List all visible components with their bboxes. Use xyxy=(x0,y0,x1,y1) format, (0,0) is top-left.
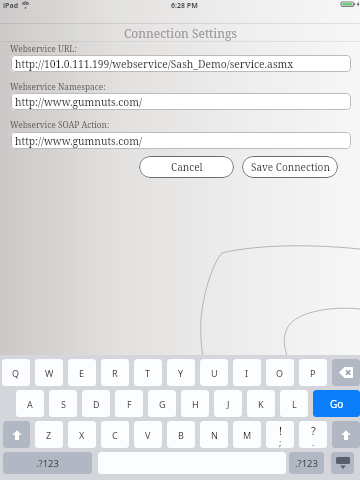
staticText: J xyxy=(227,398,230,410)
staticText: M xyxy=(243,429,252,441)
staticText: O xyxy=(276,367,284,379)
staticText: I xyxy=(245,367,249,379)
button[interactable]: E xyxy=(68,359,96,386)
button[interactable]: Shift xyxy=(3,421,30,448)
button[interactable]: V xyxy=(134,421,162,448)
staticText: P xyxy=(310,367,316,379)
button[interactable]: D xyxy=(82,390,110,417)
button[interactable]: B xyxy=(167,421,195,448)
staticText: A xyxy=(27,398,33,410)
staticText: http://101.0.111.199/webservice/Sash_Dem… xyxy=(15,57,294,71)
staticText: T xyxy=(145,367,151,379)
staticText: iPad xyxy=(3,1,19,11)
staticText: .?123 xyxy=(36,457,59,470)
staticText: Webservice Namespace: xyxy=(10,81,106,92)
staticText: L xyxy=(292,398,297,410)
button[interactable]: R xyxy=(101,359,129,386)
staticText: G xyxy=(159,398,166,410)
button[interactable]: .?123 xyxy=(289,452,324,474)
staticText: ; xyxy=(279,436,282,448)
staticText: Webservice URL: xyxy=(10,43,77,54)
button[interactable]: U xyxy=(200,359,228,386)
button[interactable]: Backspace xyxy=(332,359,360,386)
button[interactable]: A xyxy=(16,390,44,417)
button[interactable]: I xyxy=(233,359,261,386)
staticText: R xyxy=(112,367,118,379)
button[interactable]: L xyxy=(280,390,308,417)
button[interactable]: .?123 xyxy=(3,452,92,474)
staticText: E xyxy=(79,367,85,379)
staticText: C xyxy=(112,429,118,441)
staticText: H xyxy=(192,398,199,410)
staticText: Save Connection xyxy=(251,160,330,174)
button[interactable]: F xyxy=(115,390,143,417)
button[interactable]: P xyxy=(299,359,327,386)
button[interactable]: T xyxy=(134,359,162,386)
staticText: B xyxy=(178,429,184,441)
staticText: . xyxy=(312,436,315,448)
staticText: Go xyxy=(330,397,344,411)
staticText: F xyxy=(127,398,132,410)
button[interactable]: H xyxy=(181,390,209,417)
staticText: N xyxy=(211,429,218,441)
staticText: Cancel xyxy=(171,160,203,174)
button[interactable]: Cancel xyxy=(139,156,234,178)
button[interactable]: K xyxy=(247,390,275,417)
button[interactable]: Y xyxy=(167,359,195,386)
button[interactable]: M xyxy=(233,421,261,448)
staticText: Q xyxy=(12,367,20,379)
button[interactable]: Q xyxy=(2,359,30,386)
staticText: http://www.gumnuts.com/ xyxy=(15,134,143,148)
staticText: X xyxy=(79,429,85,441)
button[interactable]: Go xyxy=(313,390,360,417)
button[interactable]: Z xyxy=(35,421,63,448)
staticText: K xyxy=(258,398,264,410)
staticText: Connection Settings xyxy=(124,25,237,41)
button[interactable]: Save Connection xyxy=(242,156,338,178)
button[interactable]: S xyxy=(49,390,77,417)
button[interactable]: ? xyxy=(299,421,327,448)
button[interactable]: ! xyxy=(266,421,294,448)
staticText: W xyxy=(45,367,54,379)
staticText: 6:28 PM xyxy=(171,1,198,11)
button[interactable]: http://www.gumnuts.com/ xyxy=(11,132,351,149)
button[interactable]: G xyxy=(148,390,176,417)
button[interactable]: J xyxy=(214,390,242,417)
button[interactable]: http://101.0.111.199/webservice/Sash_Dem… xyxy=(11,55,351,72)
button[interactable]: W xyxy=(35,359,63,386)
staticText: Y xyxy=(178,367,184,379)
button[interactable]: N xyxy=(200,421,228,448)
staticText: ! xyxy=(279,423,282,438)
button[interactable]: O xyxy=(266,359,294,386)
staticText: Z xyxy=(46,429,52,441)
staticText: U xyxy=(211,367,218,379)
staticText: ? xyxy=(311,423,316,438)
button[interactable]: Hide keyboard xyxy=(331,452,354,474)
staticText: .?123 xyxy=(295,457,318,470)
staticText: D xyxy=(93,398,100,410)
button[interactable]: http://www.gumnuts.com/ xyxy=(11,93,351,110)
staticText: V xyxy=(145,429,151,441)
button[interactable]: C xyxy=(101,421,129,448)
button[interactable]: Shift xyxy=(332,421,360,448)
button[interactable]: X xyxy=(68,421,96,448)
staticText: http://www.gumnuts.com/ xyxy=(15,95,143,109)
staticText: S xyxy=(61,398,66,410)
staticText: Webservice SOAP Action: xyxy=(10,119,110,130)
